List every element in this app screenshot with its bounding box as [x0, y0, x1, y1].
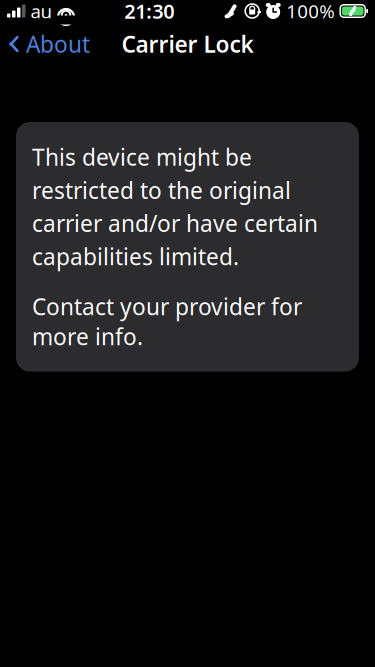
staticText: Contact your provider for more info. [32, 291, 302, 352]
staticText: Carrier Lock [121, 29, 253, 59]
staticText: 21:30 [124, 0, 174, 24]
staticText: About [26, 29, 90, 59]
staticText: au [30, 0, 52, 23]
staticText: 100% [286, 0, 335, 23]
button[interactable]: About [0, 23, 90, 65]
staticText: This device might be restricted to the o… [32, 142, 318, 271]
